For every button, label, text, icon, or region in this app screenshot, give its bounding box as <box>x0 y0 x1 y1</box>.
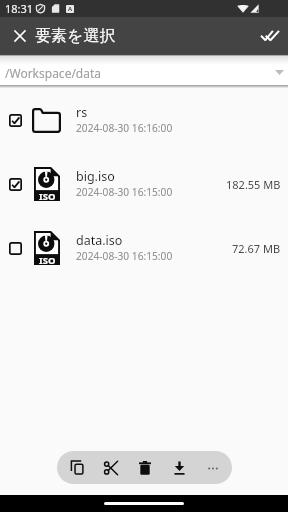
staticText: 2024-08-30 16:16:00 <box>76 121 173 135</box>
button[interactable]: /Workspace/data <box>0 54 288 88</box>
staticText: 182.55 MB <box>226 177 281 192</box>
staticText: rs <box>76 104 88 121</box>
staticText: data.iso <box>76 232 123 249</box>
button[interactable]: Select <box>0 152 31 216</box>
button[interactable]: Cut <box>94 451 128 484</box>
button[interactable]: More options <box>196 451 230 484</box>
staticText: ISO <box>39 254 56 265</box>
staticText: 2024-08-30 16:15:00 <box>76 249 173 263</box>
staticText: big.iso <box>76 168 115 185</box>
staticText: 18:31 <box>5 1 34 16</box>
button[interactable]: Select <box>0 152 288 216</box>
staticText: 72.67 MB <box>232 241 281 256</box>
button[interactable]: Delete <box>128 451 162 484</box>
button[interactable]: Confirm selection <box>252 17 288 54</box>
button[interactable]: Select <box>0 88 31 152</box>
button[interactable]: Select <box>0 216 31 280</box>
button[interactable]: Close <box>0 17 40 54</box>
button[interactable]: Select <box>0 216 288 280</box>
staticText: A <box>68 5 73 13</box>
button[interactable]: Select <box>0 88 288 152</box>
button[interactable]: Copy <box>60 451 94 484</box>
staticText: 2024-08-30 16:15:00 <box>76 185 173 199</box>
staticText: ISO <box>39 190 56 201</box>
button[interactable]: Move <box>162 451 196 484</box>
staticText: 要素を選択 <box>35 26 116 46</box>
staticText: /Workspace/data <box>5 65 102 81</box>
